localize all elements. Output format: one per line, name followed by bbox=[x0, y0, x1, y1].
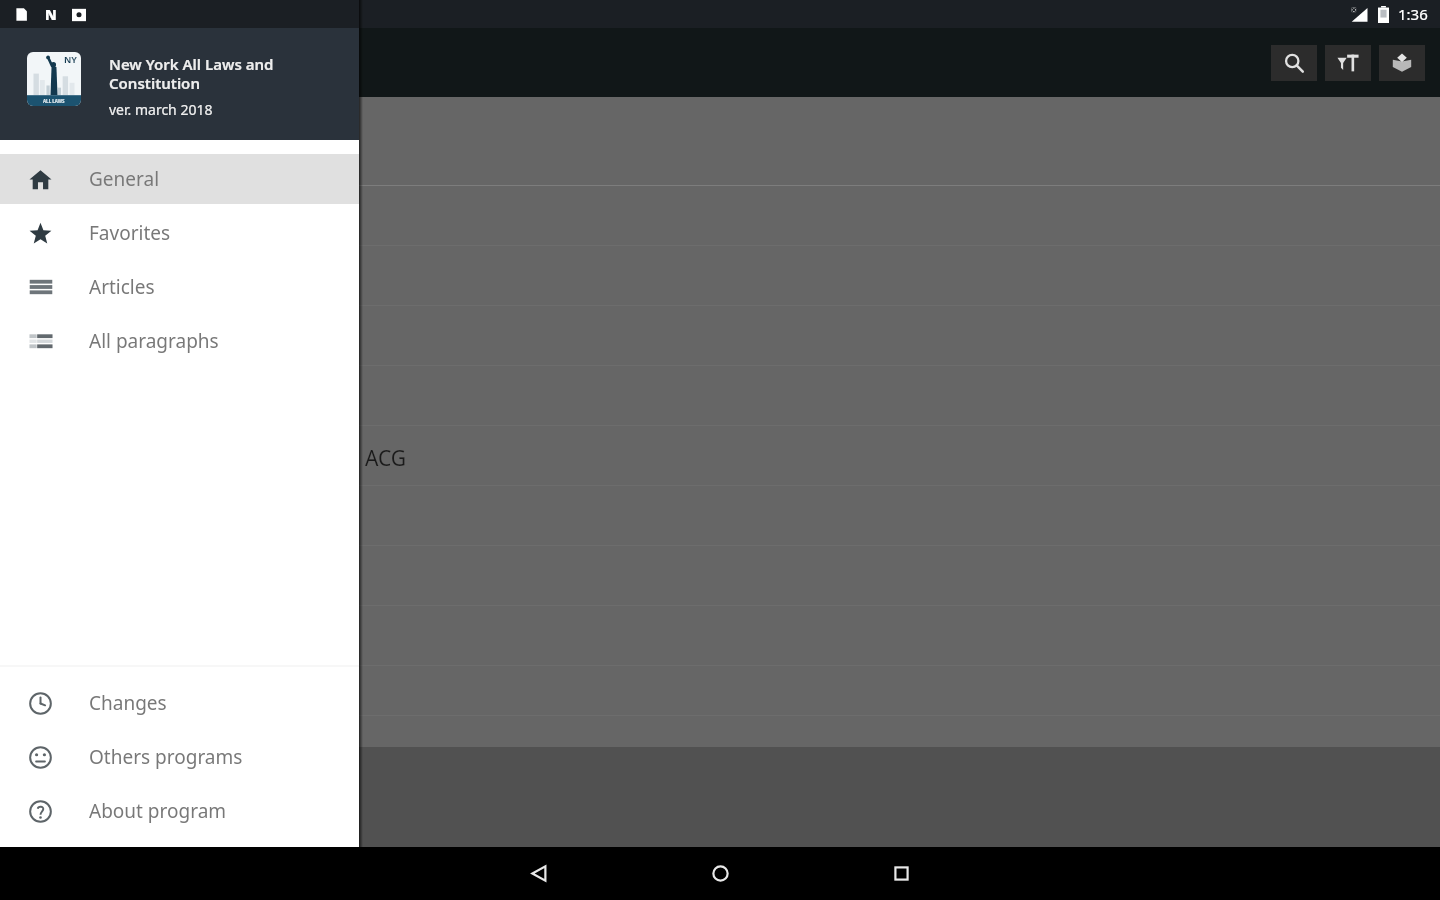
button[interactable]: General bbox=[0, 152, 359, 206]
button[interactable]: All paragraphs bbox=[0, 314, 359, 368]
button[interactable]: Home bbox=[692, 847, 748, 900]
button[interactable]: AGM bbox=[0, 246, 1440, 306]
button[interactable]: CVP bbox=[0, 486, 1440, 546]
button[interactable]: ABP bbox=[0, 126, 1440, 186]
staticText: General bbox=[89, 166, 160, 192]
button[interactable]: BVO bbox=[0, 426, 1440, 486]
button[interactable]: Articles bbox=[0, 260, 359, 314]
button[interactable]: CPL bbox=[0, 546, 1440, 606]
button[interactable]: Reading mode bbox=[1379, 45, 1425, 81]
staticText: About program bbox=[89, 798, 227, 824]
staticText: Articles bbox=[89, 274, 155, 300]
staticText: Changes bbox=[89, 690, 167, 716]
button[interactable]: ABC bbox=[0, 97, 1440, 126]
button[interactable]: ACA bbox=[0, 186, 1440, 246]
staticText: All paragraphs bbox=[89, 328, 219, 354]
button[interactable]: Others programs bbox=[0, 730, 359, 784]
button[interactable]: About program bbox=[0, 784, 359, 838]
button[interactable]: BNK bbox=[0, 366, 1440, 426]
staticText: ALL LAWS bbox=[43, 98, 65, 104]
staticText: ABC bbox=[12, 97, 53, 113]
button[interactable]: Search bbox=[1271, 45, 1317, 81]
staticText: AGM bbox=[12, 264, 60, 293]
staticText: Others programs bbox=[89, 744, 243, 770]
staticText: NY bbox=[64, 53, 77, 65]
staticText: EDN bbox=[12, 679, 55, 708]
staticText: Favorites bbox=[89, 220, 171, 246]
staticText: ver. march 2018 bbox=[109, 100, 213, 119]
button[interactable]: Text size bbox=[1325, 45, 1371, 81]
staticText: ABP bbox=[12, 144, 52, 173]
button[interactable]: Changes bbox=[0, 676, 359, 730]
button[interactable]: DOM bbox=[0, 606, 1440, 666]
staticText: ACA bbox=[12, 204, 52, 233]
button[interactable]: Favorites bbox=[0, 206, 359, 260]
button[interactable]: ARS bbox=[0, 306, 1440, 366]
button[interactable]: Back bbox=[511, 847, 567, 900]
staticText: 1:36 bbox=[1398, 4, 1428, 24]
staticText: ACG bbox=[365, 444, 407, 473]
staticText: New York All Laws and Constitution bbox=[109, 54, 274, 93]
button[interactable]: Recent apps bbox=[873, 847, 929, 900]
staticText: ARS bbox=[12, 324, 51, 353]
button[interactable]: EDN bbox=[0, 666, 1440, 716]
staticText: N bbox=[45, 5, 57, 24]
